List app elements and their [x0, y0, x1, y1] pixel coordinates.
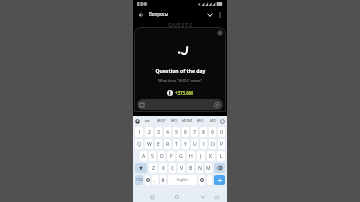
button[interactable]: Close [217, 30, 223, 36]
button[interactable]: Question of the day [134, 27, 226, 112]
staticText: E [157, 141, 160, 148]
staticText: V [180, 165, 184, 172]
button[interactable]: D [158, 151, 165, 161]
staticText: K [209, 153, 213, 160]
button[interactable]: 4 [164, 127, 171, 137]
button[interactable]: Y [182, 139, 189, 149]
staticText: T [175, 141, 178, 148]
staticText: 2 [148, 129, 151, 136]
staticText: 6 [184, 129, 187, 136]
button[interactable]: ИО [194, 116, 207, 126]
button[interactable]: V [178, 163, 185, 173]
button[interactable]: Space [168, 175, 197, 185]
button[interactable]: More options [215, 10, 224, 19]
button[interactable]: Enter [214, 175, 225, 185]
button[interactable]: X [159, 163, 167, 173]
staticText: G [179, 153, 183, 160]
button[interactable]: S [149, 151, 156, 161]
button[interactable]: A [140, 151, 147, 161]
button[interactable]: Back [136, 10, 145, 19]
staticText: S [151, 153, 154, 160]
button[interactable]: Keyboard settings [220, 119, 225, 124]
staticText: , [154, 177, 156, 183]
button[interactable]: M [205, 163, 212, 173]
staticText: ИО [171, 118, 178, 124]
staticText: . [209, 177, 211, 183]
staticText: ИО [210, 118, 217, 124]
button[interactable]: ИО [207, 116, 220, 126]
staticText: ИОМ [182, 118, 193, 124]
button[interactable]: Expand [205, 10, 214, 19]
button[interactable]: Symbols [135, 175, 143, 185]
staticText: U [193, 141, 197, 148]
button[interactable]: R [164, 139, 171, 149]
button[interactable]: Gboard [135, 119, 140, 124]
staticText: 1 [138, 129, 141, 136]
button[interactable]: 9 [209, 127, 216, 137]
button[interactable]: Emoji [145, 175, 150, 185]
button[interactable]: , [152, 175, 158, 185]
staticText: Q [137, 141, 141, 148]
button[interactable]: ИОМ [181, 116, 194, 126]
button[interactable]: G [177, 151, 185, 161]
button[interactable]: T [173, 139, 180, 149]
staticText: 7 [193, 129, 196, 136]
button[interactable]: Backspace [214, 163, 225, 173]
button[interactable]: W [145, 139, 153, 149]
staticText: N [198, 165, 202, 172]
button[interactable]: B [187, 163, 194, 173]
button[interactable]: Q [135, 139, 143, 149]
staticText: H [189, 153, 193, 160]
staticText: Вопросы [149, 11, 169, 17]
button[interactable]: C [169, 163, 176, 173]
staticText: F [170, 153, 173, 160]
button[interactable]: Shift [135, 163, 147, 173]
staticText: ?123 [136, 178, 143, 182]
staticText: L [220, 153, 223, 160]
button[interactable]: 6 [182, 127, 189, 137]
staticText: M [206, 165, 211, 172]
button[interactable]: 3 [155, 127, 162, 137]
staticText: J [200, 153, 202, 160]
button[interactable] [137, 99, 223, 110]
button[interactable]: L [217, 151, 225, 161]
staticText: What does "HODL" mean? [158, 78, 202, 83]
button[interactable]: Recents [148, 193, 156, 201]
button[interactable]: I [200, 139, 207, 149]
staticText: Z [152, 165, 155, 172]
button[interactable]: K [207, 151, 215, 161]
button[interactable]: E [155, 139, 162, 149]
button[interactable]: 1 [135, 127, 143, 137]
button[interactable]: P [218, 139, 225, 149]
button[interactable]: Home [173, 193, 181, 201]
button[interactable]: Voice input [160, 175, 166, 185]
staticText: 3 [157, 129, 160, 136]
staticText: 8 [202, 129, 205, 136]
button[interactable]: 5 [173, 127, 180, 137]
button[interactable]: F [167, 151, 175, 161]
button[interactable]: Sticker [199, 175, 205, 185]
button[interactable]: Hide keyboard [199, 193, 207, 201]
button[interactable]: U [191, 139, 198, 149]
button[interactable]: 7 [191, 127, 198, 137]
button[interactable]: ИОР [154, 116, 168, 126]
button[interactable]: 2 [145, 127, 153, 137]
button[interactable]: J [197, 151, 205, 161]
button[interactable]: ик [140, 116, 154, 126]
staticText: 5 [175, 129, 178, 136]
staticText: A [142, 153, 146, 160]
button[interactable]: 0 [218, 127, 225, 137]
button[interactable]: ИО [168, 116, 181, 126]
button[interactable]: H [187, 151, 195, 161]
staticText: QUESTS [168, 21, 193, 28]
staticText: ИО [197, 118, 204, 124]
staticText: W [147, 141, 152, 148]
staticText: 4 [166, 129, 169, 136]
button[interactable]: N [196, 163, 203, 173]
button[interactable]: . [207, 175, 212, 185]
staticText: · English · [175, 178, 190, 182]
button[interactable]: Switch keyboard [213, 193, 221, 201]
button[interactable]: 8 [200, 127, 207, 137]
button[interactable]: O [209, 139, 216, 149]
button[interactable]: Z [149, 163, 157, 173]
